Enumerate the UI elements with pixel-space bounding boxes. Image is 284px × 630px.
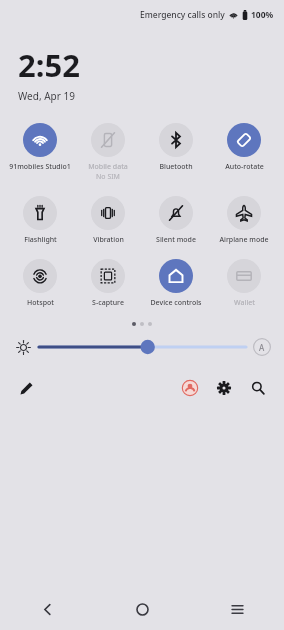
staticText: 2:52 [18,44,80,86]
button[interactable]: Edit [14,376,38,400]
staticText: 91mobiles Studio1 [9,162,71,172]
staticText: Wallet [234,298,255,308]
button[interactable]: Auto brightness [252,337,272,357]
staticText: Hotspot [27,298,54,308]
staticText: No SIM [96,172,120,182]
staticText: Auto-rotate [225,162,264,172]
staticText: Airplane mode [219,235,269,245]
button[interactable]: 91mobiles Studio1 [6,121,74,174]
staticText: Flashlight [24,235,57,245]
button[interactable]: S-capture [74,257,142,310]
button[interactable]: Flashlight [6,194,74,247]
button[interactable]: Wallet [210,257,278,310]
button[interactable]: Airplane mode [210,194,278,247]
button[interactable]: Mobile data [74,121,142,184]
staticText: Emergency calls only [140,9,225,21]
staticText: Wed, Apr 19 [18,89,75,103]
button[interactable]: Hotspot [6,257,74,310]
button[interactable]: Silent mode [142,194,210,247]
staticText: Mobile data [88,162,128,172]
button[interactable]: Device controls [142,257,210,310]
button[interactable]: Settings [212,376,236,400]
button[interactable]: Home [123,590,161,628]
button[interactable]: Vibration [74,194,142,247]
staticText: Vibration [93,235,124,245]
button[interactable]: Recents [218,590,256,628]
staticText: S-capture [92,298,124,308]
staticText: Silent mode [156,235,196,245]
button[interactable]: Back [28,590,66,628]
staticText: Device controls [150,298,202,308]
staticText: A [259,342,265,353]
button[interactable]: Auto-rotate [210,121,278,174]
button[interactable]: User [178,376,202,400]
button[interactable]: Search [246,376,270,400]
button[interactable]: Bluetooth [142,121,210,174]
staticText: Bluetooth [159,162,193,172]
button[interactable] [39,336,246,358]
button[interactable]: Brightness [12,336,34,358]
staticText: 100% [251,9,274,21]
